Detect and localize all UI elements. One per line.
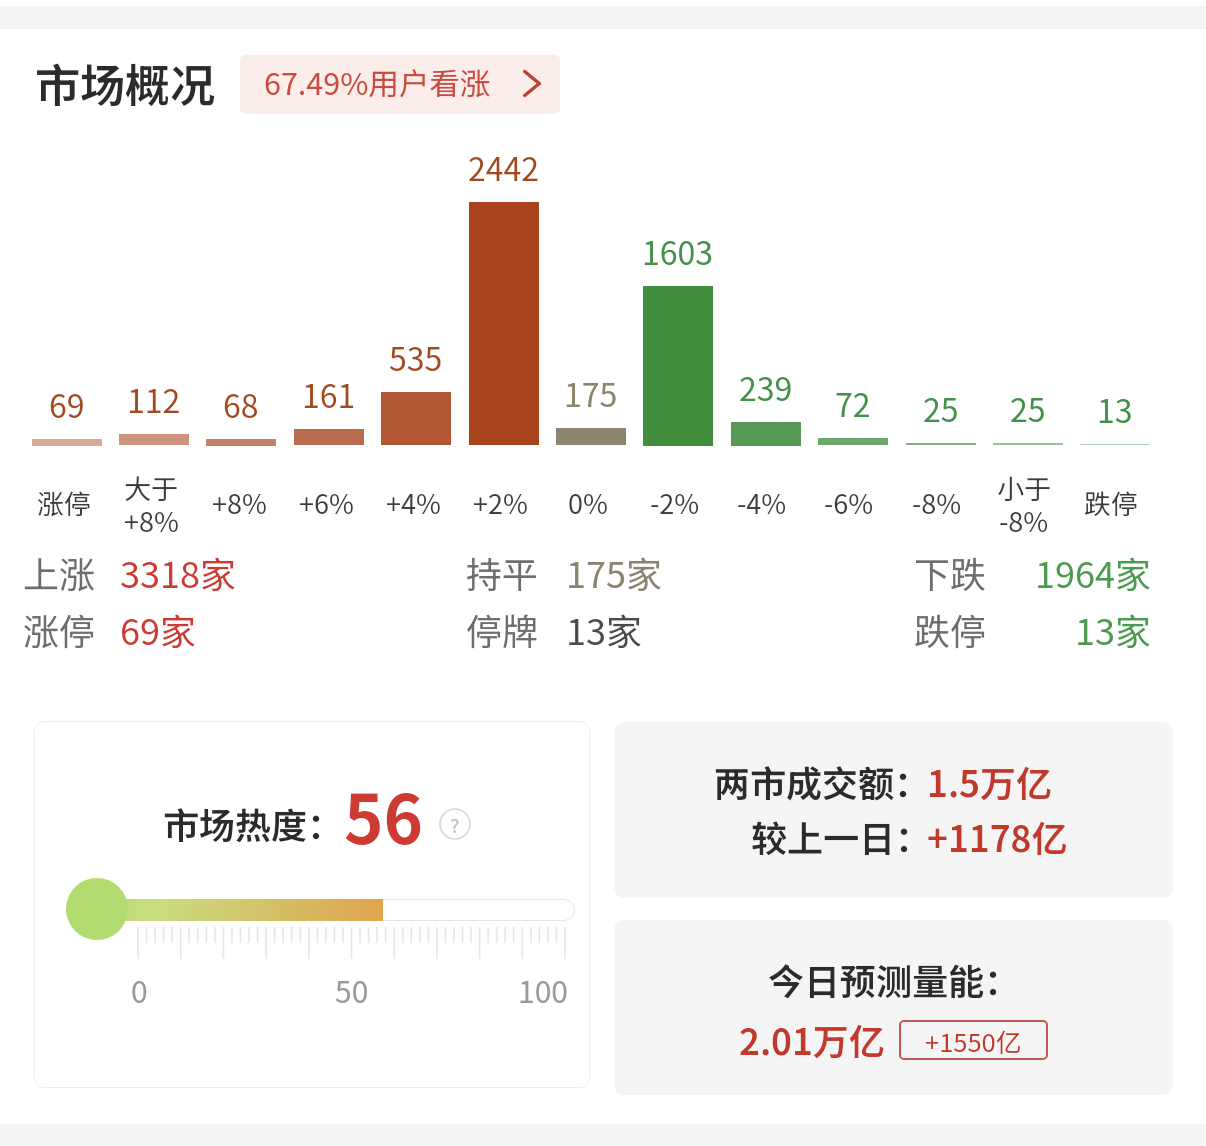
staticText: 市场热度： xyxy=(163,797,344,849)
button[interactable] xyxy=(614,920,1173,1095)
staticText: 1603 xyxy=(642,228,714,274)
staticText: +8% xyxy=(212,483,267,522)
staticText: -8% xyxy=(999,501,1049,540)
staticText: 25 xyxy=(1010,385,1046,431)
button[interactable]: Help xyxy=(439,808,471,840)
staticText: 100 xyxy=(518,968,568,1011)
staticText: 跌停 xyxy=(914,603,987,655)
staticText: 较上一日： xyxy=(751,810,932,862)
staticText: 上涨 xyxy=(23,546,96,598)
staticText: ? xyxy=(450,810,460,839)
staticText: +1550亿 xyxy=(925,1022,1022,1059)
staticText: 大于 xyxy=(124,468,178,507)
staticText: 112 xyxy=(127,376,181,422)
staticText: 1964家 xyxy=(1035,546,1151,598)
staticText: 13家 xyxy=(566,603,642,655)
staticText: 跌停 xyxy=(1084,483,1138,522)
staticText: 2442 xyxy=(468,144,540,190)
staticText: 今日预测量能： xyxy=(768,953,1021,1005)
staticText: 69家 xyxy=(120,603,196,655)
staticText: 56 xyxy=(344,766,424,863)
staticText: 50 xyxy=(335,968,369,1011)
staticText: 0 xyxy=(131,968,148,1011)
staticText: 13 xyxy=(1097,386,1133,432)
staticText: 535 xyxy=(389,334,443,380)
staticText: -8% xyxy=(912,483,962,522)
staticText: 72 xyxy=(835,380,871,426)
button[interactable] xyxy=(34,721,590,1088)
staticText: -2% xyxy=(650,483,700,522)
staticText: 175家 xyxy=(566,546,662,598)
staticText: 3318家 xyxy=(120,546,236,598)
staticText: 0% xyxy=(568,483,608,522)
staticText: -6% xyxy=(824,483,874,522)
staticText: 68 xyxy=(223,381,259,427)
button[interactable] xyxy=(614,722,1173,898)
staticText: 小于 xyxy=(997,468,1051,507)
staticText: 涨停 xyxy=(23,603,96,655)
staticText: 69 xyxy=(49,381,85,427)
staticText: -4% xyxy=(737,483,787,522)
staticText: +1178亿 xyxy=(927,810,1068,862)
staticText: 239 xyxy=(739,364,793,410)
staticText: 市场概况 xyxy=(35,50,216,115)
staticText: 持平 xyxy=(466,546,539,598)
staticText: 175 xyxy=(564,370,618,416)
staticText: 13家 xyxy=(1075,603,1151,655)
staticText: 161 xyxy=(302,371,356,417)
staticText: 停牌 xyxy=(466,603,539,655)
staticText: 1.5万亿 xyxy=(927,755,1052,807)
staticText: 两市成交额： xyxy=(714,755,931,807)
staticText: 下跌 xyxy=(914,546,987,598)
button[interactable]: 67.49%用户看涨 xyxy=(240,55,560,114)
staticText: 25 xyxy=(923,385,959,431)
staticText: +8% xyxy=(124,501,179,540)
staticText: 涨停 xyxy=(37,483,91,522)
staticText: 2.01万亿 xyxy=(739,1013,885,1065)
staticText: +4% xyxy=(386,483,441,522)
staticText: 67.49%用户看涨 xyxy=(264,60,491,104)
staticText: +6% xyxy=(299,483,354,522)
staticText: +2% xyxy=(473,483,528,522)
